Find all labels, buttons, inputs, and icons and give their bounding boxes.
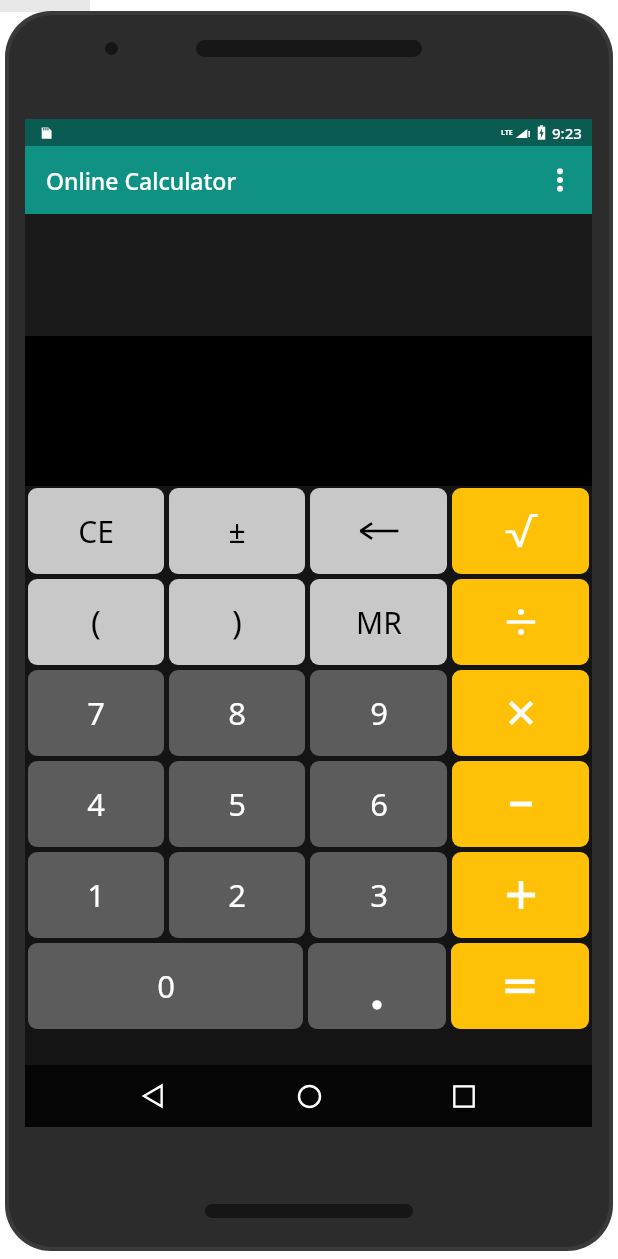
button[interactable]: (	[28, 579, 164, 665]
staticText: 1	[87, 874, 105, 916]
staticText: 2	[228, 874, 246, 916]
button[interactable]: 7	[28, 670, 164, 756]
button[interactable]: 9	[310, 670, 447, 756]
button[interactable]: 3	[310, 852, 447, 938]
staticText: (	[91, 600, 101, 645]
button[interactable]: 2	[169, 852, 305, 938]
staticText: Online Calculator	[46, 165, 237, 196]
staticText: 6	[370, 783, 388, 825]
button[interactable]: 4	[28, 761, 164, 847]
staticText: 9:23	[552, 123, 582, 143]
staticText: 8	[228, 692, 246, 734]
staticText: MR	[356, 602, 402, 643]
button[interactable]: MR	[310, 579, 447, 665]
staticText: ±	[228, 511, 246, 552]
button[interactable]: Recents	[436, 1068, 492, 1124]
staticText: !	[528, 127, 531, 139]
button[interactable]: )	[169, 579, 305, 665]
button[interactable]: Back	[125, 1068, 181, 1124]
button[interactable]: 0	[28, 943, 303, 1029]
button[interactable]: 6	[310, 761, 447, 847]
button[interactable]: Plus	[452, 852, 589, 938]
staticText: CE	[78, 511, 114, 552]
button[interactable]: 8	[169, 670, 305, 756]
button[interactable]: Backspace	[310, 488, 447, 574]
button[interactable]: Square root	[452, 488, 589, 574]
staticText: 5	[228, 783, 246, 825]
button[interactable]: Home	[281, 1068, 337, 1124]
staticText: LTE	[501, 128, 513, 138]
button[interactable]: Multiply	[452, 670, 589, 756]
button[interactable]: More options	[536, 156, 584, 204]
button[interactable]: 5	[169, 761, 305, 847]
button[interactable]: Divide	[452, 579, 589, 665]
staticText: )	[232, 600, 242, 645]
staticText: 4	[87, 783, 105, 825]
staticText: 0	[157, 965, 175, 1007]
staticText: 3	[370, 874, 388, 916]
staticText: 7	[87, 692, 105, 734]
button[interactable]: 1	[28, 852, 164, 938]
staticText: 9	[370, 692, 388, 734]
button[interactable]: Minus	[452, 761, 589, 847]
button[interactable]: CE	[28, 488, 164, 574]
button[interactable]: Decimal point	[308, 943, 446, 1029]
button[interactable]: ±	[169, 488, 305, 574]
button[interactable]: Equals	[451, 943, 589, 1029]
